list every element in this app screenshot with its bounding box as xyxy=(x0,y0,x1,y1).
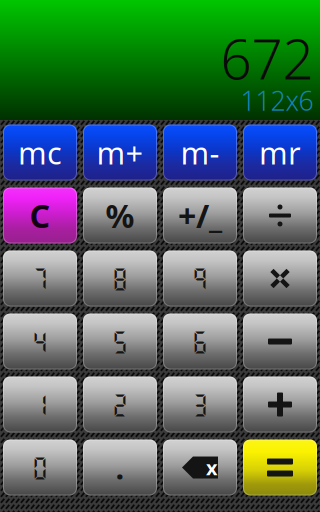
button[interactable]: 7 xyxy=(0,247,80,310)
button[interactable]: Plus xyxy=(240,373,320,436)
staticText: 6 xyxy=(191,328,208,355)
staticText: 3 xyxy=(191,391,208,418)
staticText: 0 xyxy=(31,454,48,481)
button[interactable]: Backspace xyxy=(160,436,240,499)
button[interactable]: 4 xyxy=(0,310,80,373)
staticText: 8 xyxy=(111,265,128,292)
button[interactable]: Minus xyxy=(240,310,320,373)
button[interactable]: Equals xyxy=(240,436,320,499)
staticText: +/_ xyxy=(178,194,222,237)
staticText: m+ xyxy=(96,132,143,173)
button[interactable]: 0 xyxy=(0,436,80,499)
button[interactable]: Divide xyxy=(240,184,320,247)
button[interactable]: mr xyxy=(240,121,320,184)
button[interactable]: m+ xyxy=(80,121,160,184)
staticText: m- xyxy=(180,132,219,173)
button[interactable]: 9 xyxy=(160,247,240,310)
staticText: % xyxy=(105,194,134,237)
staticText: 112x6 xyxy=(240,83,313,118)
button[interactable]: 8 xyxy=(80,247,160,310)
button[interactable]: . xyxy=(80,436,160,499)
button[interactable]: % xyxy=(80,184,160,247)
button[interactable]: +/_ xyxy=(160,184,240,247)
staticText: 7 xyxy=(31,265,48,292)
staticText: . xyxy=(115,447,124,488)
staticText: mr xyxy=(259,132,301,173)
button[interactable]: 1 xyxy=(0,373,80,436)
staticText: 9 xyxy=(191,265,208,292)
staticText: 1 xyxy=(31,391,48,418)
button[interactable]: mc xyxy=(0,121,80,184)
staticText: 4 xyxy=(31,328,48,355)
button[interactable]: Multiply xyxy=(240,247,320,310)
button[interactable]: 5 xyxy=(80,310,160,373)
button[interactable]: 2 xyxy=(80,373,160,436)
staticText: x xyxy=(206,454,218,481)
staticText: 672 xyxy=(220,22,313,95)
staticText: 2 xyxy=(111,391,128,418)
staticText: 5 xyxy=(111,328,128,355)
button[interactable]: C xyxy=(0,184,80,247)
button[interactable]: 6 xyxy=(160,310,240,373)
staticText: mc xyxy=(18,132,62,173)
staticText: C xyxy=(29,194,50,237)
button[interactable]: m- xyxy=(160,121,240,184)
button[interactable]: 3 xyxy=(160,373,240,436)
